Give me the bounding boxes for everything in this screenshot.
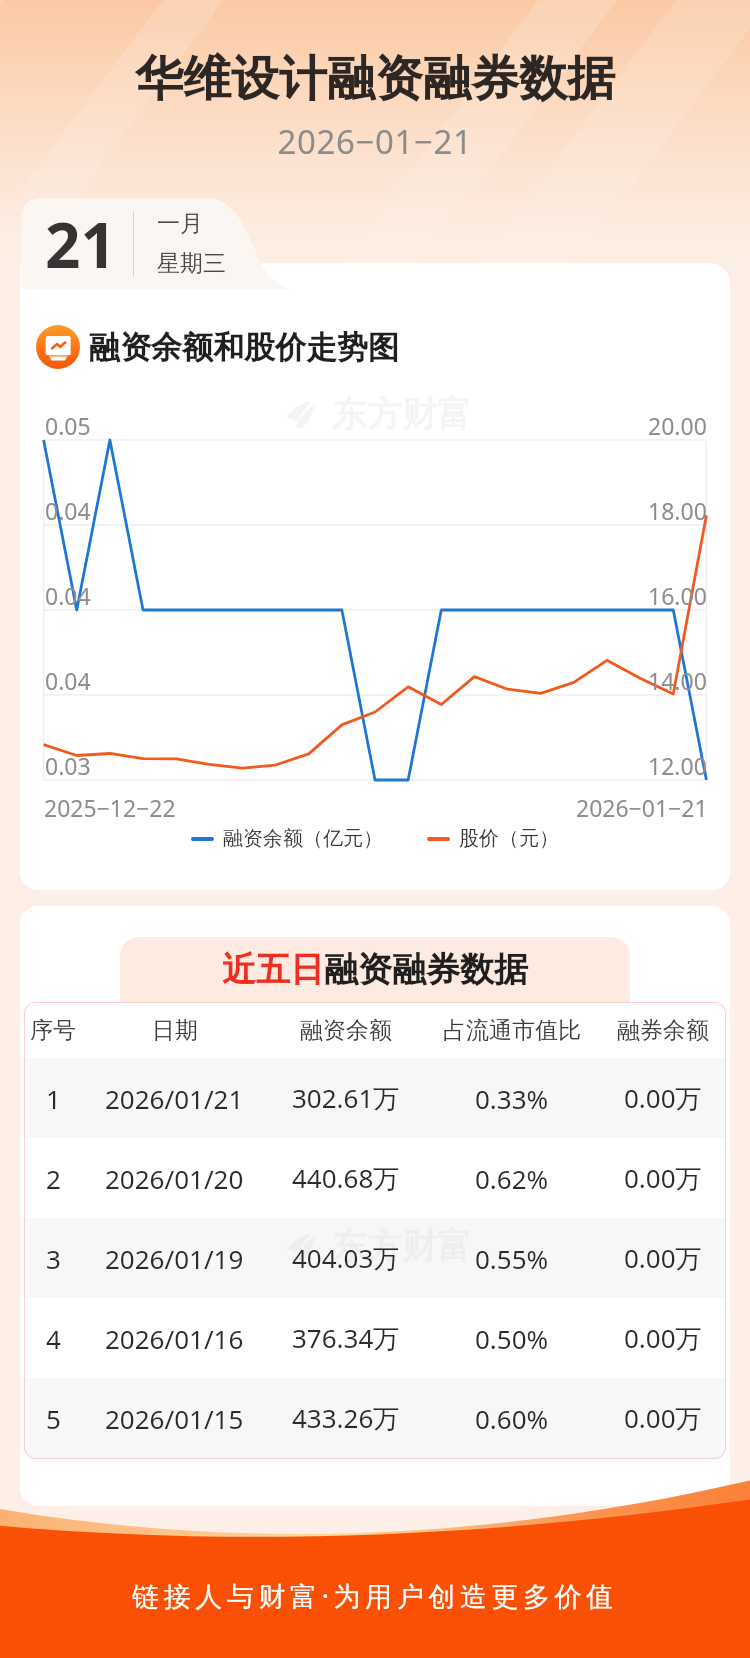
staticText: 302.61万 bbox=[292, 1080, 400, 1116]
staticText: 序号 bbox=[30, 1016, 76, 1045]
button[interactable]: 股价（元） bbox=[427, 826, 559, 851]
button[interactable]: 1 bbox=[24, 1058, 726, 1138]
staticText: 2026/01/20 bbox=[105, 1161, 244, 1196]
staticText: 0.00万 bbox=[624, 1240, 702, 1276]
staticText: 0.04 bbox=[45, 580, 91, 611]
staticText: 东方财富 bbox=[332, 1224, 472, 1268]
staticText: 2026/01/16 bbox=[105, 1321, 244, 1356]
staticText: 链接人与财富·为用户创造更多价值 bbox=[0, 1577, 750, 1614]
button[interactable]: 5 bbox=[24, 1378, 726, 1458]
staticText: 2026/01/21 bbox=[105, 1081, 244, 1116]
staticText: 16.00 bbox=[648, 580, 707, 611]
staticText: 2 bbox=[46, 1161, 61, 1196]
staticText: 日期 bbox=[152, 1016, 198, 1045]
staticText: 0.04 bbox=[45, 665, 91, 696]
staticText: 2026/01/19 bbox=[105, 1241, 244, 1276]
staticText: 0.00万 bbox=[624, 1160, 702, 1196]
staticText: 0.50% bbox=[475, 1321, 549, 1356]
staticText: 2026/01/15 bbox=[105, 1401, 244, 1436]
staticText: 股价（元） bbox=[459, 826, 559, 851]
staticText: 0.03 bbox=[45, 750, 91, 781]
staticText: 21 bbox=[45, 202, 116, 286]
staticText: 东方财富 bbox=[332, 392, 472, 436]
staticText: 融券余额 bbox=[617, 1016, 709, 1045]
staticText: 5 bbox=[46, 1401, 61, 1436]
staticText: 0.04 bbox=[45, 495, 91, 526]
staticText: 一月 bbox=[157, 209, 203, 238]
staticText: 2026−01−21 bbox=[0, 119, 750, 164]
staticText: 4 bbox=[46, 1321, 61, 1356]
staticText: 0.05 bbox=[45, 410, 91, 441]
staticText: 14.00 bbox=[648, 665, 707, 696]
button[interactable]: 3 bbox=[24, 1218, 726, 1298]
staticText: 376.34万 bbox=[292, 1320, 400, 1356]
staticText: 0.00万 bbox=[624, 1080, 702, 1116]
staticText: 融资融券数据 bbox=[324, 948, 528, 991]
staticText: 433.26万 bbox=[292, 1400, 400, 1436]
staticText: 0.00万 bbox=[624, 1320, 702, 1356]
button[interactable]: 2 bbox=[24, 1138, 726, 1218]
button[interactable]: 融资余额和股价走势图 bbox=[36, 325, 80, 369]
staticText: 404.03万 bbox=[292, 1240, 400, 1276]
staticText: 0.62% bbox=[475, 1161, 549, 1196]
staticText: 18.00 bbox=[648, 495, 707, 526]
staticText: 华维设计融资融券数据 bbox=[0, 49, 750, 109]
staticText: 440.68万 bbox=[292, 1160, 400, 1196]
staticText: 2025−12−22 bbox=[44, 792, 176, 823]
staticText: 融资余额和股价走势图 bbox=[89, 328, 399, 367]
staticText: 近五日 bbox=[222, 948, 324, 991]
button[interactable]: 4 bbox=[24, 1298, 726, 1378]
staticText: 1 bbox=[46, 1081, 61, 1116]
staticText: 3 bbox=[46, 1241, 61, 1276]
staticText: 0.60% bbox=[475, 1401, 549, 1436]
staticText: 融资余额 bbox=[300, 1016, 392, 1045]
staticText: 12.00 bbox=[648, 750, 707, 781]
staticText: 星期三 bbox=[157, 249, 226, 278]
staticText: 0.33% bbox=[475, 1081, 549, 1116]
button[interactable]: 融资余额（亿元） bbox=[191, 826, 383, 851]
staticText: 2026−01−21 bbox=[576, 792, 708, 823]
staticText: 融资余额（亿元） bbox=[223, 826, 383, 851]
staticText: 0.00万 bbox=[624, 1400, 702, 1436]
staticText: 占流通市值比 bbox=[443, 1016, 581, 1045]
staticText: 0.55% bbox=[475, 1241, 549, 1276]
staticText: 20.00 bbox=[648, 410, 707, 441]
